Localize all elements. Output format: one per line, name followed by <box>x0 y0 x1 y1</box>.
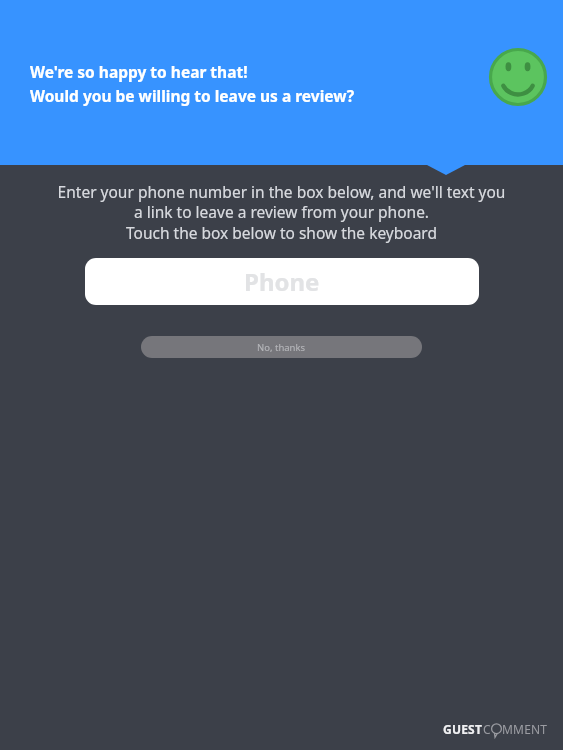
staticText: Phone <box>244 265 320 298</box>
staticText: Enter your phone number in the box below… <box>0 181 563 244</box>
button[interactable]: No, thanks <box>141 336 422 358</box>
staticText: C <box>483 721 491 737</box>
staticText: We're so happy to hear that! <box>30 61 248 82</box>
staticText: MMENT <box>502 721 548 737</box>
staticText: No, thanks <box>257 341 306 354</box>
button[interactable]: Phone <box>85 258 479 305</box>
button[interactable]: Happy rating <box>489 48 547 106</box>
staticText: GUEST <box>443 721 483 737</box>
staticText: Would you be willing to leave us a revie… <box>30 85 355 106</box>
